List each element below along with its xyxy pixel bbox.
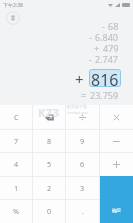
button[interactable]: % [0, 199, 32, 223]
staticText: 2 [47, 183, 52, 193]
button[interactable]: 6 [66, 152, 99, 176]
staticText: % [13, 206, 19, 216]
button[interactable]: 7 [0, 129, 32, 153]
button[interactable]: divide [66, 105, 99, 129]
button[interactable]: C [0, 105, 32, 129]
staticText: - [89, 53, 92, 63]
button[interactable]: 1 [0, 176, 32, 200]
button[interactable]: . [66, 199, 99, 223]
staticText: 5 [47, 159, 52, 169]
button[interactable]: minus [100, 129, 133, 153]
button[interactable]: times [100, 105, 133, 129]
staticText: 0 [47, 206, 52, 216]
staticText: 9 [80, 136, 85, 146]
button[interactable]: 9 [66, 129, 99, 153]
button[interactable]: backspace [33, 105, 65, 129]
button[interactable]: History [6, 11, 20, 25]
staticText: + [94, 42, 100, 52]
staticText: 7 [14, 136, 19, 146]
staticText: 4 [14, 159, 19, 169]
staticText: = [81, 89, 87, 99]
button[interactable]: 5 [33, 152, 65, 176]
staticText: 6 [80, 159, 85, 169]
staticText: 2,747 [95, 53, 119, 63]
staticText: + [75, 69, 84, 87]
button[interactable]: 0 [33, 199, 65, 223]
staticText: 1 [14, 183, 19, 193]
staticText: - [102, 20, 105, 30]
staticText: . [82, 206, 84, 216]
staticText: 8 [47, 136, 52, 146]
button[interactable]: 4 [0, 152, 32, 176]
staticText: 23,759 [90, 89, 119, 99]
staticText: 6,840 [95, 31, 119, 41]
button[interactable]: 8 [33, 129, 65, 153]
staticText: coolapk.com [67, 110, 88, 115]
button[interactable]: 3 [66, 176, 99, 200]
staticText: - [89, 31, 92, 41]
staticText: 确定 [112, 208, 121, 214]
staticText: 68 [108, 20, 119, 30]
button[interactable]: 确定 [100, 176, 133, 223]
button[interactable]: 2 [33, 176, 65, 200]
staticText: 479 [103, 42, 119, 52]
staticText: C [14, 112, 19, 122]
staticText: 下午2:38 [3, 2, 23, 9]
staticText: KZ3 [38, 105, 60, 120]
staticText: 3 [80, 183, 85, 193]
staticText: 酷安网下载 [67, 104, 87, 109]
staticText: 816 [91, 69, 119, 87]
button[interactable]: plus [100, 152, 133, 176]
